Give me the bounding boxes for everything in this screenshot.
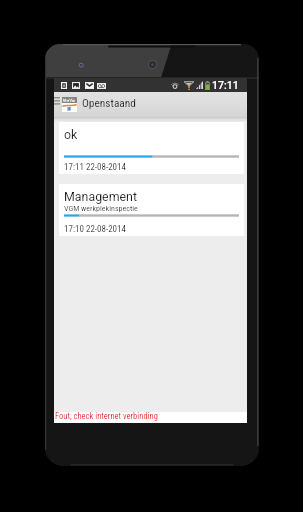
staticText: Management — [64, 189, 138, 204]
staticText: ok — [64, 127, 78, 142]
staticText: 17:11 — [212, 79, 239, 91]
button[interactable]: Open navigation drawer — [54, 92, 247, 117]
button[interactable]: ok — [59, 122, 244, 174]
staticText: 17:10 22-08-2014 — [64, 224, 126, 235]
other: Open navigation drawer — [54, 97, 60, 105]
staticText: Fout, check internet verbinding — [55, 411, 158, 421]
staticText: VGM werkplekinspectie — [64, 204, 138, 213]
staticText: Openstaand — [82, 96, 136, 109]
button[interactable]: Management — [59, 184, 244, 236]
staticText: 17:11 22-08-2014 — [64, 162, 126, 173]
